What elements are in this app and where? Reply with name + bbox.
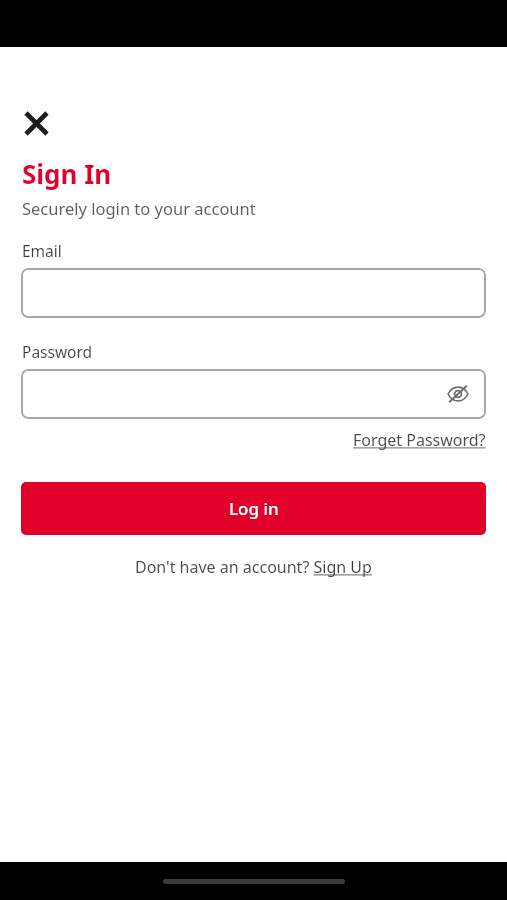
staticText: Don't have an account? Sign Up [135,556,372,578]
button[interactable] [21,268,486,318]
staticText: Securely login to your account [22,197,256,219]
button[interactable]: Log in [21,482,486,535]
button[interactable]: Show password [21,369,486,419]
staticText: Email [22,240,62,261]
button[interactable]: Don't have an account? Sign Up [135,556,372,578]
button[interactable]: Show password [442,378,474,410]
staticText: Sign In [22,156,112,191]
button[interactable]: Close [21,108,51,138]
button[interactable]: Forget Password? [353,429,486,451]
staticText: Log in [229,497,279,520]
staticText: Password [22,341,93,362]
staticText: Forget Password? [353,429,486,451]
